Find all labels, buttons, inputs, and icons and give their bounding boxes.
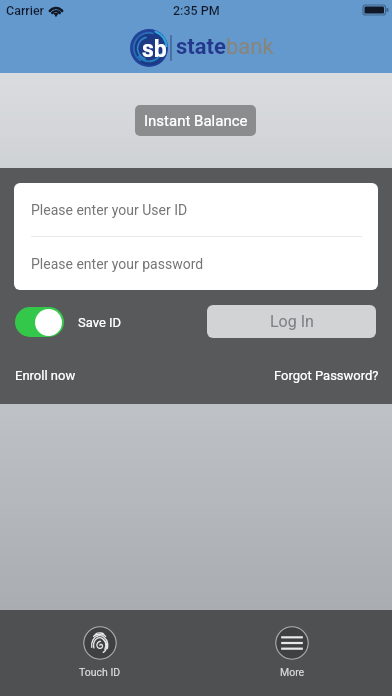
staticText: Instant Balance <box>144 112 248 130</box>
button[interactable]: Log In <box>207 305 376 338</box>
staticText: Please enter your password <box>31 256 204 272</box>
button[interactable]: More <box>247 626 337 678</box>
button[interactable]: Touch ID <box>55 626 145 678</box>
staticText: Carrier <box>6 3 45 18</box>
staticText: sb <box>142 36 167 63</box>
staticText: More <box>280 666 305 678</box>
button[interactable]: Enroll now <box>15 368 76 383</box>
staticText: Save ID <box>78 315 122 330</box>
staticText: 2:35 PM <box>173 3 220 18</box>
button[interactable]: Save ID toggle <box>15 307 64 337</box>
button[interactable]: Please enter your User ID <box>14 183 378 236</box>
button[interactable]: Forgot Password? <box>274 368 379 383</box>
staticText: state <box>176 34 226 60</box>
staticText: Touch ID <box>79 666 121 678</box>
staticText: bank <box>226 34 274 60</box>
staticText: Please enter your User ID <box>31 202 188 218</box>
button[interactable]: Instant Balance <box>135 105 256 136</box>
staticText: Log In <box>270 312 314 331</box>
button[interactable]: Please enter your password <box>14 237 378 290</box>
